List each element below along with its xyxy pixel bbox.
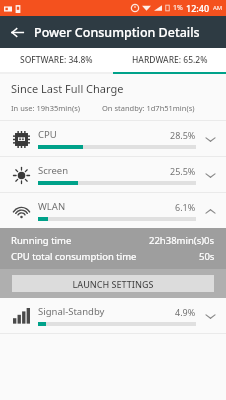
staticText: AM (213, 4, 223, 12)
staticText: CPU total consumption time (11, 250, 199, 263)
staticText: WLAN (38, 200, 175, 213)
button[interactable]: LAUNCH SETTINGS (12, 275, 214, 292)
staticText: 4.9% (175, 306, 196, 318)
button[interactable]: Back (6, 21, 28, 43)
staticText: 22h38min(s)0s (149, 234, 215, 247)
staticText: Power Consumption Details (34, 24, 200, 41)
staticText: LAUNCH SETTINGS (72, 278, 154, 290)
staticText: CPU (38, 128, 170, 141)
button[interactable]: CPU (0, 121, 226, 156)
staticText: Signal-Standby (38, 305, 175, 318)
staticText: 12:40 (186, 2, 210, 14)
staticText: In use: 19h35min(s) (11, 103, 102, 113)
button[interactable]: HARDWARE: 65.2% (113, 48, 226, 72)
staticText: HARDWARE: 65.2% (132, 54, 208, 66)
staticText: 25.5% (170, 165, 196, 177)
button[interactable]: Screen (0, 157, 226, 192)
staticText: 1% (173, 3, 183, 13)
staticText: On standby: 1d7h51min(s) (102, 103, 215, 113)
staticText: Running time (11, 234, 149, 247)
button[interactable]: WLAN (0, 193, 226, 228)
staticText: Screen (38, 164, 170, 177)
staticText: Since Last Full Charge (11, 81, 124, 96)
staticText: 6.1% (175, 201, 196, 213)
button[interactable]: Signal-Standby (0, 298, 226, 333)
button[interactable]: SOFTWARE: 34.8% (0, 48, 113, 72)
staticText: 50s (199, 250, 215, 263)
staticText: 28.5% (170, 129, 196, 141)
staticText: SOFTWARE: 34.8% (20, 54, 93, 66)
